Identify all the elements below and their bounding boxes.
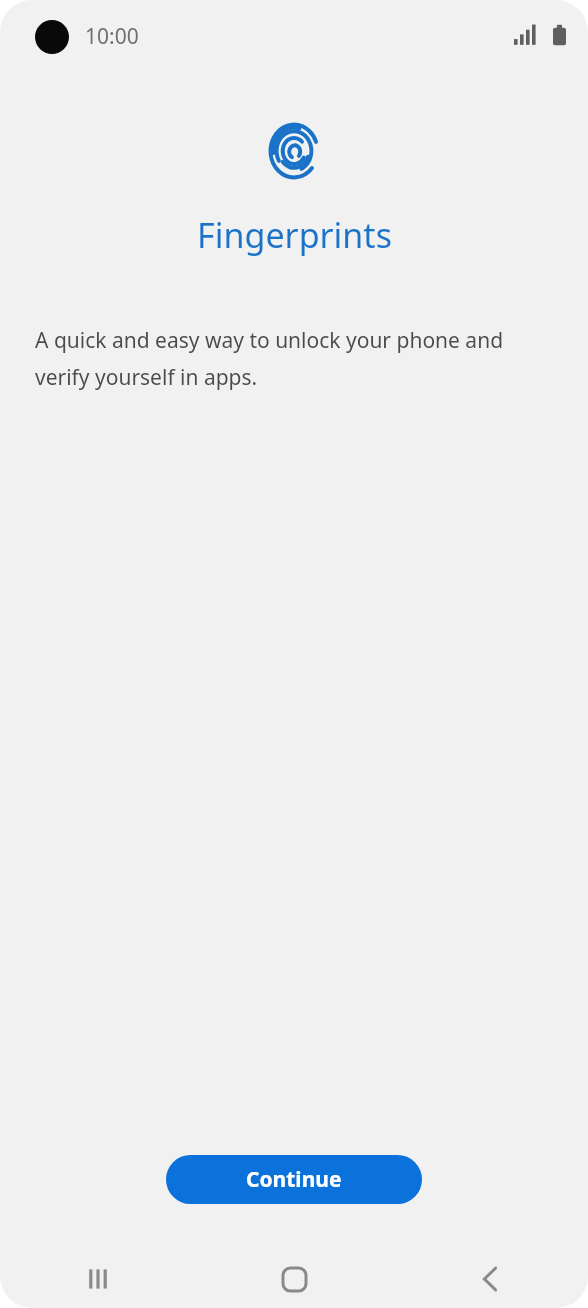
staticText: 10:00 [85, 22, 139, 51]
staticText: Fingerprints [197, 212, 392, 258]
button[interactable]: Recents [0, 1250, 196, 1308]
staticText: Continue [246, 1165, 342, 1194]
staticText: A quick and easy way to unlock your phon… [35, 326, 536, 391]
button[interactable]: Continue [166, 1155, 422, 1204]
button[interactable]: Home [196, 1250, 392, 1308]
button[interactable]: Back [392, 1250, 588, 1308]
